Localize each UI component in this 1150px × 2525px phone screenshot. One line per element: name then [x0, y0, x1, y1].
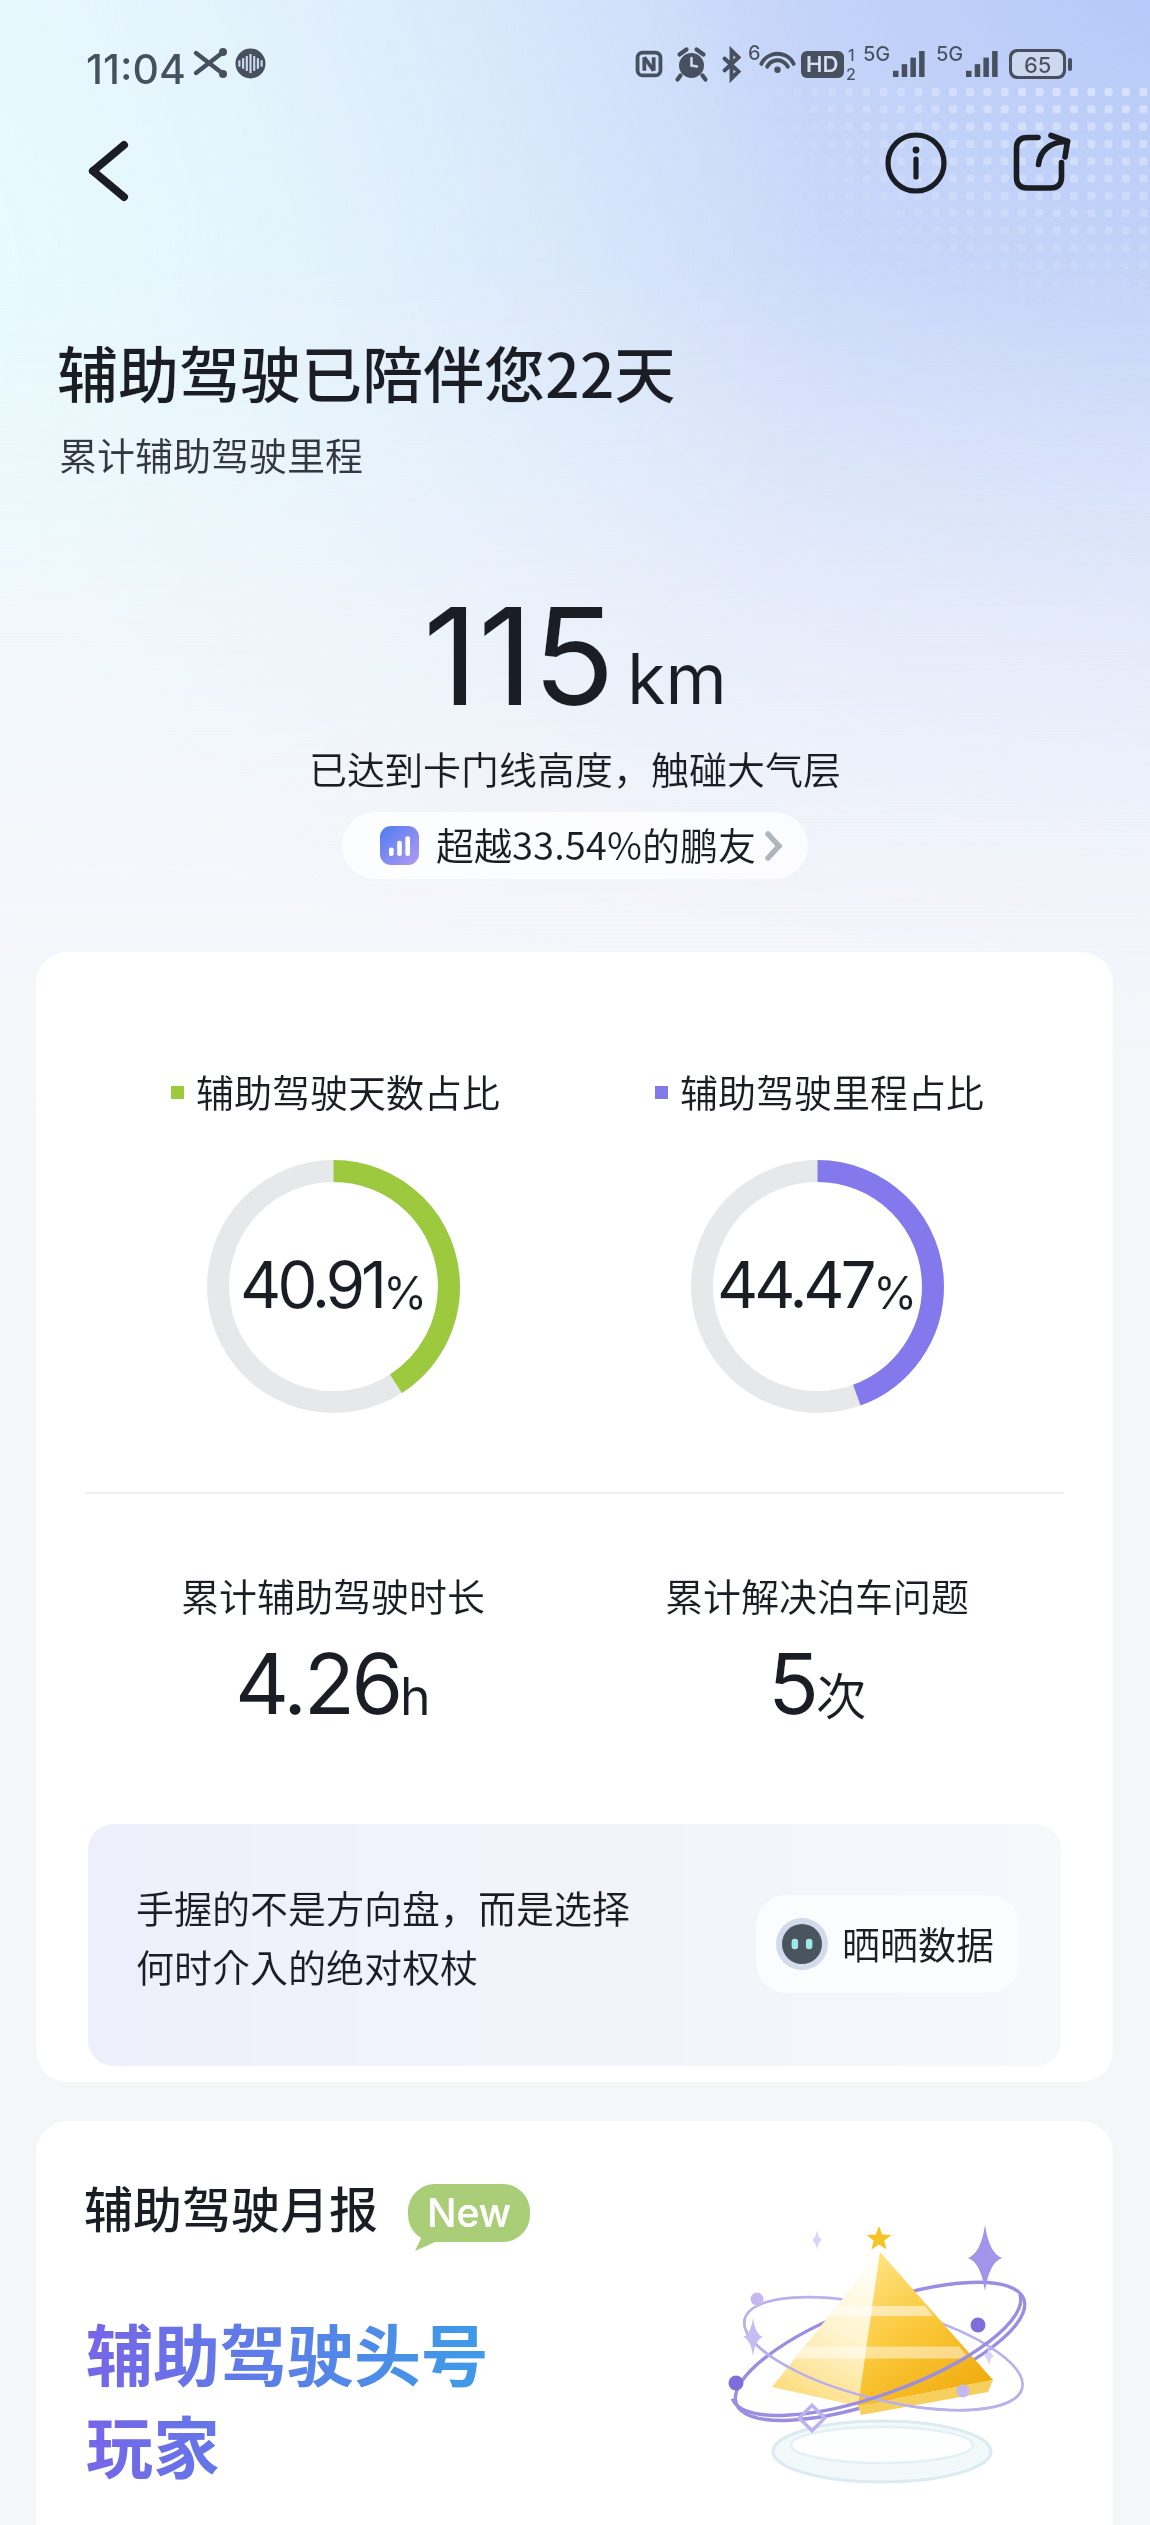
button[interactable]: 晒晒数据 — [756, 1895, 1019, 1993]
staticText: 4.26 — [235, 1633, 400, 1735]
staticText: 辅助驾驶里程占比 — [680, 1063, 985, 1118]
staticText: 40.91 — [240, 1246, 383, 1323]
staticText: 辅助驾驶月报 — [84, 2171, 379, 2242]
staticText: 已达到卡门线高度，触碰大气层 — [0, 740, 1150, 795]
staticText: 5G — [863, 42, 891, 66]
staticText: 115 — [423, 574, 615, 737]
staticText: 11:04 — [86, 44, 186, 94]
button[interactable]: Back — [64, 126, 154, 216]
staticText: 累计辅助驾驶里程 — [59, 426, 364, 481]
staticText: 2 — [846, 64, 856, 83]
staticText: 44.47 — [717, 1246, 873, 1323]
staticText: h — [400, 1665, 431, 1728]
staticText: 晒晒数据 — [842, 1915, 995, 1970]
staticText: 5 — [768, 1633, 816, 1735]
staticText: 辅助驾驶头号 玩家 — [86, 2303, 488, 2492]
staticText: New — [427, 2189, 512, 2236]
staticText: km — [627, 636, 727, 721]
staticText: % — [383, 1265, 428, 1319]
staticText: 5G — [936, 42, 964, 66]
button[interactable]: 超越33.54%的鹏友 — [342, 812, 808, 879]
staticText: HD — [806, 51, 839, 78]
staticText: 1 — [848, 45, 855, 64]
staticText: 6 — [748, 41, 761, 65]
staticText: 超越33.54%的鹏友 — [436, 816, 756, 871]
staticText: 手握的不是方向盘，而是选择 — [136, 1879, 631, 1934]
staticText: 何时介入的绝对权杖 — [136, 1938, 479, 1993]
button[interactable]: 辅助驾驶月报 — [36, 2121, 1113, 2525]
button[interactable]: Share — [995, 119, 1083, 207]
staticText: 次 — [816, 1657, 866, 1729]
staticText: % — [873, 1265, 918, 1319]
staticText: 辅助驾驶已陪伴您22天 — [57, 327, 676, 415]
staticText: 累计辅助驾驶时长 — [181, 1567, 486, 1622]
button[interactable]: Info — [872, 119, 960, 207]
staticText: 65 — [1024, 52, 1052, 76]
staticText: 累计解决泊车问题 — [665, 1567, 970, 1622]
staticText: 辅助驾驶天数占比 — [196, 1063, 501, 1118]
